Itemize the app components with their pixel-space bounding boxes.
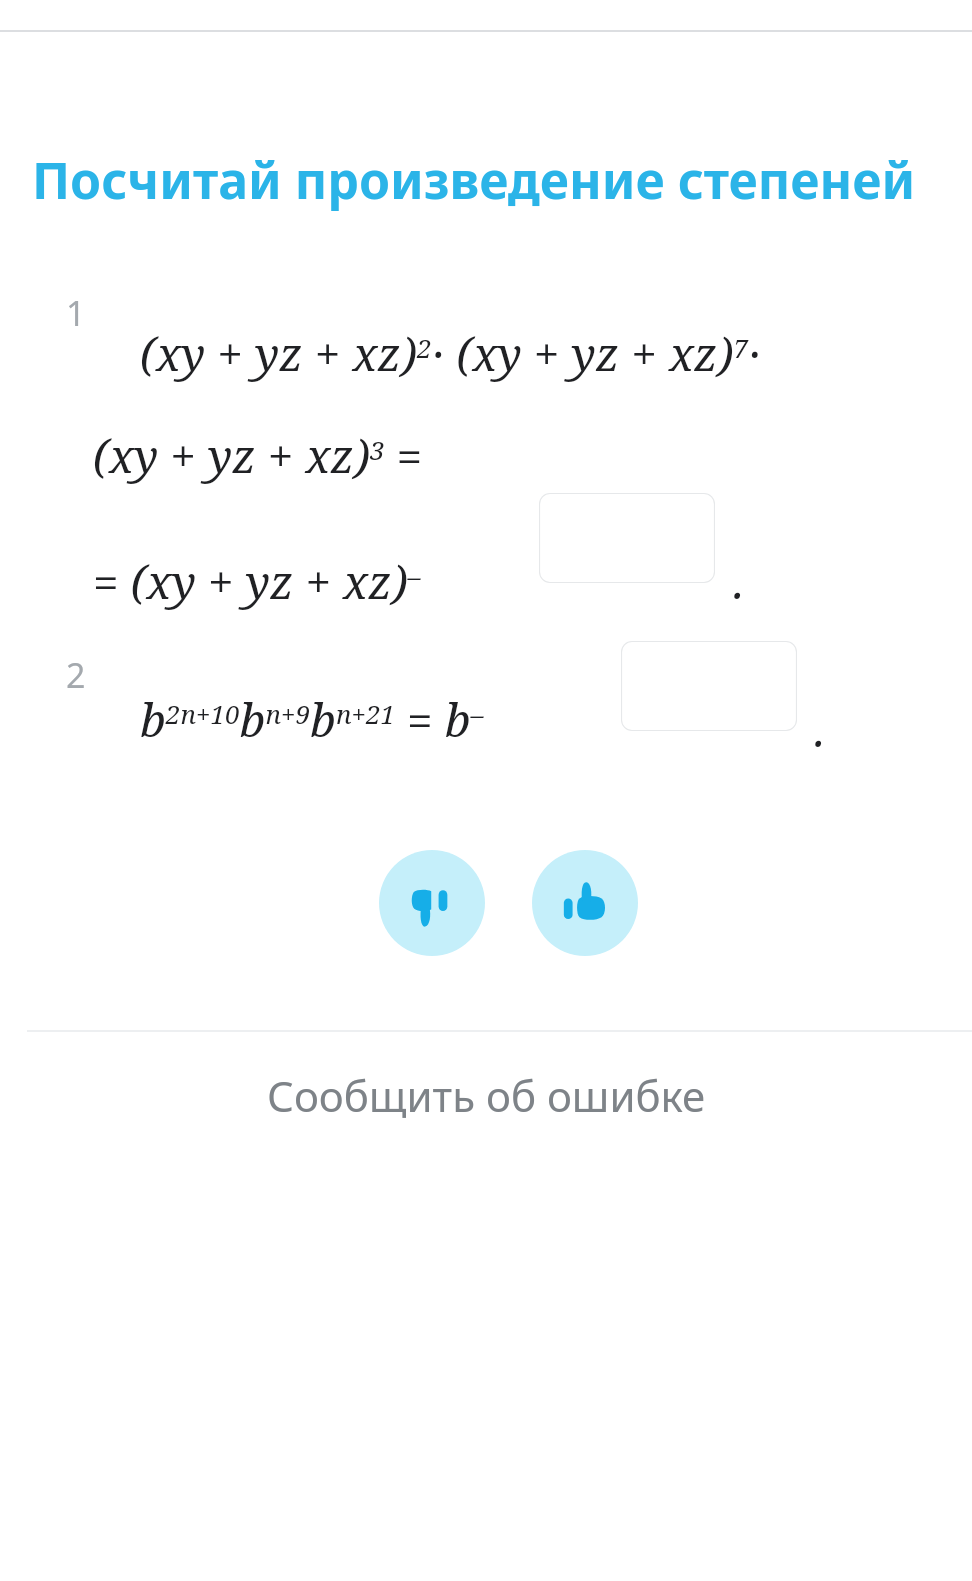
- staticText: Посчитай произведение степеней: [32, 146, 916, 214]
- staticText: .: [733, 550, 745, 613]
- staticText: .: [814, 698, 826, 761]
- button[interactable]: [621, 641, 797, 731]
- staticText: (xy + yz + xz)3 =: [93, 424, 423, 487]
- staticText: (xy + yz + xz)2· (xy + yz + xz)7·: [140, 322, 762, 385]
- staticText: b2n+10bn+9bn+21 = b–: [140, 688, 484, 751]
- button[interactable]: [539, 493, 715, 583]
- staticText: Сообщить об ошибке: [267, 1067, 706, 1124]
- button[interactable]: Like: [532, 850, 638, 956]
- staticText: 1: [66, 290, 86, 336]
- button[interactable]: Dislike: [379, 850, 485, 956]
- button[interactable]: Сообщить об ошибке: [0, 1055, 972, 1135]
- staticText: = (xy + yz + xz)–: [93, 550, 421, 613]
- staticText: 2: [66, 652, 86, 698]
